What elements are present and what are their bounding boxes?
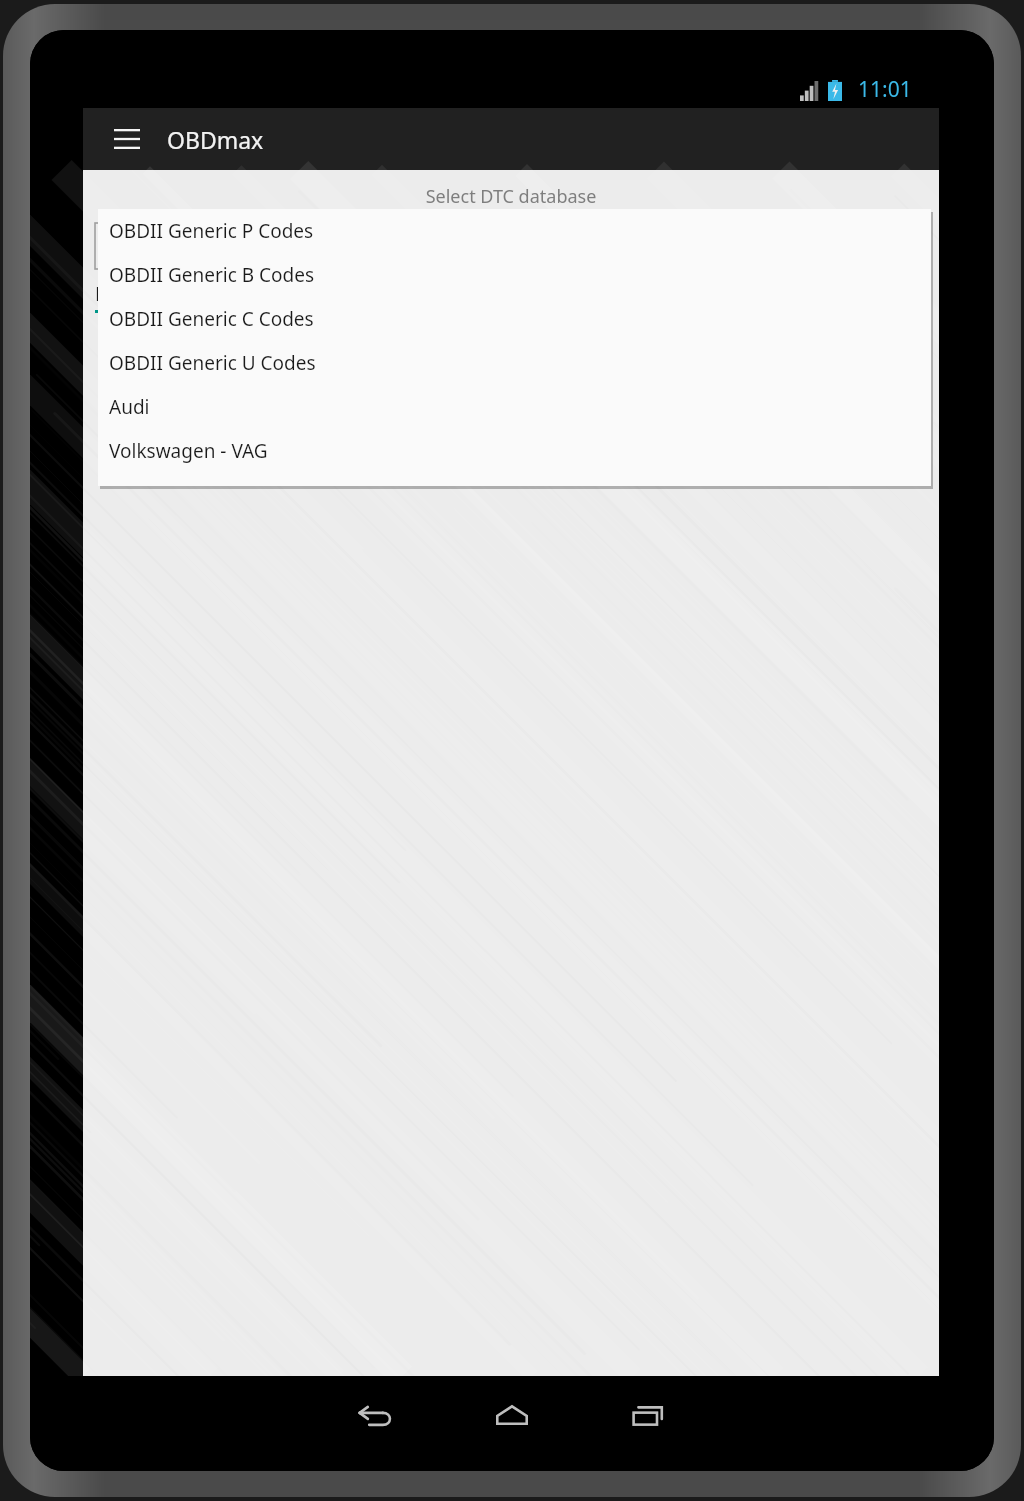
staticText: Volkswagen - VAG bbox=[109, 438, 268, 464]
button[interactable]: OBDII Generic U Codes bbox=[98, 341, 931, 385]
button[interactable]: Back bbox=[328, 1390, 424, 1442]
staticText: OBDII Generic P Codes bbox=[109, 218, 314, 244]
staticText: Select DTC database bbox=[83, 184, 939, 209]
button[interactable]: OBDII Generic B Codes bbox=[98, 253, 931, 297]
staticText: P bbox=[95, 281, 107, 307]
button[interactable]: Audi bbox=[98, 385, 931, 429]
staticText: OBDmax bbox=[167, 124, 264, 155]
button[interactable]: Volkswagen - VAG bbox=[98, 429, 931, 473]
button[interactable]: OBDII Generic P Codes bbox=[98, 209, 931, 253]
staticText: 11:01 bbox=[858, 75, 912, 104]
button[interactable]: P bbox=[95, 281, 927, 313]
staticText: OBDII Generic C Codes bbox=[109, 306, 314, 332]
staticText: OBDII Generic U Codes bbox=[109, 350, 316, 376]
staticText: Audi bbox=[109, 394, 150, 420]
button[interactable]: Recent apps bbox=[600, 1390, 696, 1442]
button[interactable]: Open navigation drawer bbox=[105, 117, 149, 161]
button[interactable]: OBDII Generic C Codes bbox=[98, 297, 931, 341]
button[interactable]: Home bbox=[464, 1390, 560, 1442]
staticText: OBDII Generic B Codes bbox=[109, 262, 314, 288]
button[interactable] bbox=[95, 223, 927, 269]
